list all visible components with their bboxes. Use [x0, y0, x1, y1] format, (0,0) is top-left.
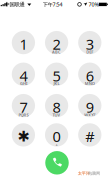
staticText: + — [56, 141, 58, 147]
staticText: 9 — [86, 97, 94, 117]
staticText: # — [85, 127, 94, 146]
button[interactable]: # — [78, 123, 101, 146]
staticText: 3 — [86, 34, 94, 54]
staticText: 6 — [86, 66, 94, 85]
staticText: 5 — [53, 66, 61, 85]
staticText: MNO — [85, 81, 95, 86]
button[interactable]: 8 — [45, 94, 68, 117]
staticText: 下午7:54 — [42, 1, 62, 8]
button[interactable]: 5 — [45, 63, 68, 86]
button[interactable]: ✱ — [12, 123, 35, 146]
button[interactable]: 0 — [45, 123, 68, 146]
button[interactable]: 1 — [12, 31, 35, 54]
button[interactable]: 9 — [78, 94, 101, 117]
button[interactable]: 7 — [12, 94, 35, 117]
staticText: 电脑网 — [88, 171, 100, 176]
staticText: 4 — [19, 66, 27, 85]
staticText: DEF — [86, 49, 93, 54]
staticText: ABC — [52, 49, 61, 54]
staticText: 中国联通 — [4, 1, 24, 8]
staticText: WXYZ — [84, 112, 95, 117]
staticText: 2 — [53, 34, 61, 54]
button[interactable]: 4 — [12, 63, 35, 86]
staticText: 太平洋 — [78, 171, 90, 176]
button[interactable]: 2 — [45, 31, 68, 54]
button[interactable]: 3 — [78, 31, 101, 54]
staticText: 7 — [19, 97, 27, 117]
button[interactable]: Call — [45, 151, 69, 175]
staticText: 0 — [53, 127, 61, 146]
staticText: 1 — [19, 34, 27, 54]
staticText: GHI — [20, 81, 27, 86]
staticText: 70% — [88, 1, 98, 8]
staticText: 8 — [53, 97, 61, 117]
staticText: ✱ — [17, 128, 29, 145]
staticText: TUV — [53, 112, 61, 117]
button[interactable]: 6 — [78, 63, 101, 86]
staticText: PQRS — [18, 112, 28, 117]
staticText: JKL — [54, 81, 60, 86]
